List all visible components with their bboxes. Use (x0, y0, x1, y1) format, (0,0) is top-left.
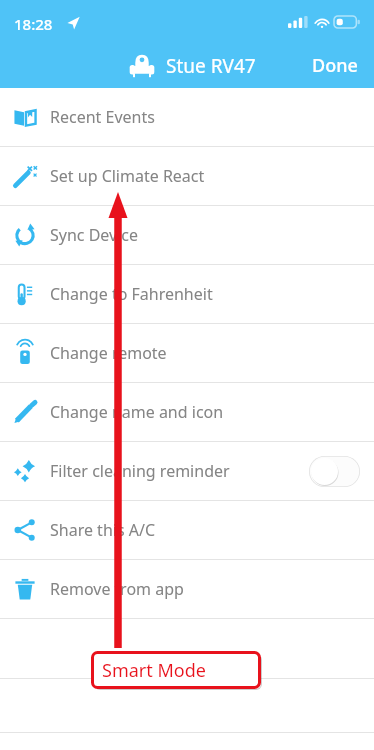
button[interactable]: Sync Device (0, 206, 374, 264)
button[interactable]: Share this A/C (0, 501, 374, 559)
staticText: Recent Events (50, 106, 155, 128)
staticText: Remove from app (50, 578, 184, 600)
button[interactable]: Change name and icon (0, 383, 374, 441)
staticText: Set up Climate React (50, 165, 205, 187)
staticText: Change to Fahrenheit (50, 283, 213, 305)
button[interactable]: Remove from app (0, 560, 374, 618)
button[interactable]: Change remote (0, 324, 374, 382)
staticText: Change name and icon (50, 401, 224, 423)
staticText: Change remote (50, 342, 167, 364)
button[interactable]: Change to Fahrenheit (0, 265, 374, 323)
button[interactable]: Set up Climate React (0, 147, 374, 205)
staticText: Filter cleaning reminder (50, 460, 230, 482)
button[interactable]: Filter cleaning reminder toggle (309, 456, 360, 487)
button[interactable]: Filter cleaning reminder (0, 442, 374, 500)
staticText: Sync Device (50, 224, 139, 246)
staticText: Share this A/C (50, 519, 156, 541)
staticText: Stue RV47 (166, 53, 256, 79)
staticText: Done (312, 53, 358, 78)
button[interactable]: Done (296, 47, 374, 84)
staticText: 18:28 (14, 14, 53, 34)
button[interactable]: Recent Events (0, 88, 374, 146)
staticText: Smart Mode (102, 658, 206, 683)
